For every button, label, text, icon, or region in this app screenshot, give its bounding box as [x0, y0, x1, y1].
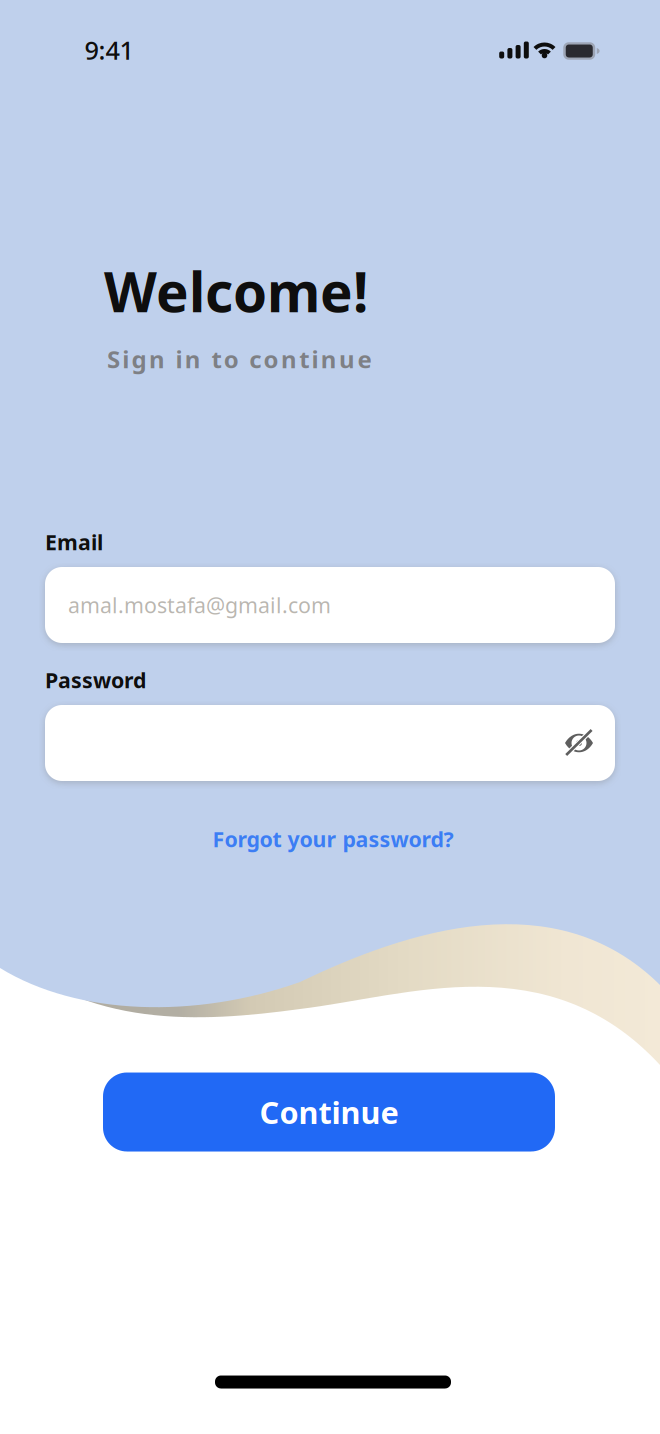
- button[interactable]: [45, 705, 615, 781]
- staticText: amal.mostafa@gmail.com: [68, 591, 331, 619]
- staticText: 9:41: [84, 33, 133, 67]
- staticText: Password: [45, 666, 146, 694]
- button[interactable]: amal.mostafa@gmail.com: [45, 567, 615, 643]
- staticText: Continue: [259, 1092, 398, 1132]
- button[interactable]: Forgot your password?: [193, 816, 473, 862]
- button[interactable]: Continue: [103, 1072, 555, 1151]
- staticText: Sign in to continue: [107, 343, 371, 375]
- staticText: Forgot your password?: [212, 825, 453, 853]
- staticText: Email: [45, 528, 103, 556]
- staticText: Welcome!: [104, 255, 368, 327]
